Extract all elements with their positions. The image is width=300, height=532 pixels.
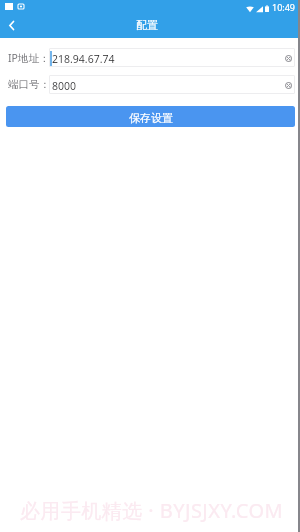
staticText: IP地址：	[8, 51, 49, 65]
button[interactable]: 8000	[49, 75, 295, 94]
button[interactable]: 清除	[283, 53, 294, 64]
button[interactable]: 保存设置	[6, 106, 295, 127]
button[interactable]: 返回	[0, 14, 22, 36]
staticText: 8000	[52, 79, 77, 93]
staticText: 端口号：	[8, 78, 49, 91]
staticText: 218.94.67.74	[52, 52, 115, 66]
staticText: 保存设置	[129, 111, 173, 125]
button[interactable]: 218.94.67.74	[49, 48, 295, 67]
button[interactable]: 清除	[283, 80, 294, 91]
staticText: 10:49	[272, 1, 296, 13]
staticText: 配置	[136, 18, 158, 32]
staticText: 必用手机精选 · BYJSJXY.COM	[20, 497, 284, 524]
